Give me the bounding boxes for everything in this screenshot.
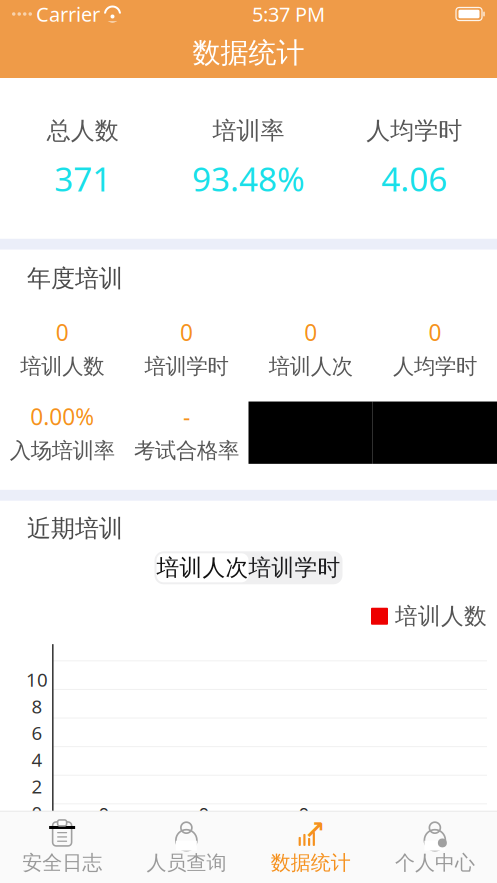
- staticText: 0: [56, 317, 69, 347]
- staticText: 0: [98, 801, 109, 826]
- button[interactable]: 安全日志: [0, 816, 124, 879]
- staticText: 人员查询: [146, 850, 226, 875]
- staticText: 数据统计: [192, 36, 304, 70]
- staticText: -: [183, 401, 190, 432]
- staticText: 371: [54, 156, 111, 201]
- staticText: 培训人次: [269, 353, 353, 379]
- staticText: 近期培训: [27, 514, 123, 543]
- button[interactable]: 人员查询: [124, 816, 248, 879]
- staticText: 培训学时: [144, 353, 228, 379]
- staticText: 0: [304, 317, 317, 347]
- staticText: 入场培训率: [10, 438, 115, 464]
- staticText: 考试合格率: [134, 438, 239, 464]
- staticText: 4.06: [381, 156, 447, 201]
- staticText: 安全日志: [22, 850, 102, 875]
- staticText: 93.48%: [192, 156, 305, 201]
- staticText: 培训人数: [20, 353, 104, 379]
- staticText: 5:37 PM: [252, 1, 325, 27]
- staticText: 培训率: [212, 116, 284, 145]
- button[interactable]: ↗: [248, 816, 373, 879]
- staticText: 0: [180, 317, 193, 347]
- staticText: 4: [31, 747, 42, 772]
- staticText: 个人中心: [395, 850, 475, 875]
- staticText: 0.00%: [30, 401, 94, 432]
- staticText: 人均学时: [393, 353, 477, 379]
- button[interactable]: 培训学时: [248, 553, 340, 582]
- staticText: 8: [31, 694, 42, 719]
- staticText: 年度培训: [27, 264, 123, 293]
- staticText: 培训学时: [248, 554, 340, 582]
- staticText: 人均学时: [366, 116, 462, 145]
- staticText: 0: [298, 801, 309, 826]
- staticText: 0: [198, 801, 209, 826]
- staticText: 10: [26, 667, 48, 692]
- staticText: 0: [428, 317, 441, 347]
- staticText: 数据统计: [271, 850, 351, 875]
- staticText: 2: [31, 774, 42, 799]
- staticText: 6: [31, 720, 42, 745]
- staticText: 培训人次: [156, 554, 248, 582]
- button[interactable]: 个人中心: [373, 816, 497, 879]
- button[interactable]: 培训人次: [156, 553, 248, 582]
- staticText: 培训人数: [395, 602, 487, 630]
- staticText: Carrier: [36, 1, 100, 27]
- staticText: 总人数: [47, 116, 119, 145]
- staticText: ↗: [304, 816, 325, 844]
- staticText: 0: [31, 800, 42, 825]
